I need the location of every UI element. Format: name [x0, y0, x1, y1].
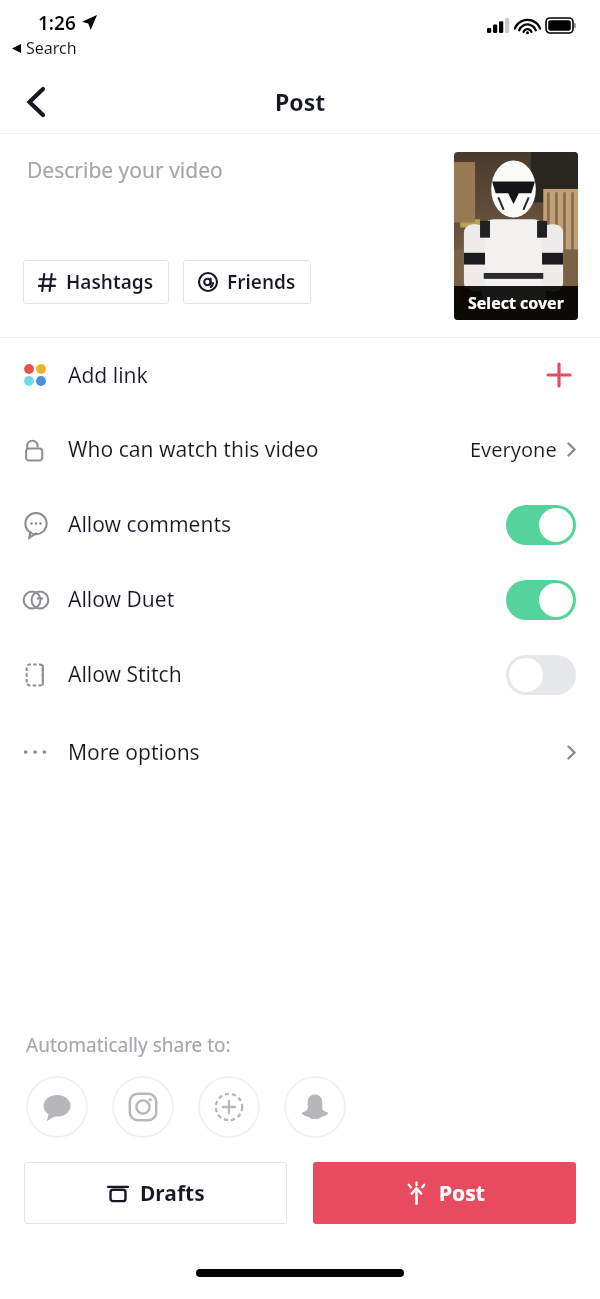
staticText: Hashtags	[66, 269, 154, 295]
staticText: Select cover	[468, 292, 564, 314]
button[interactable]: Post	[313, 1162, 576, 1224]
staticText: Allow Stitch	[68, 660, 182, 689]
staticText: Post	[439, 1179, 485, 1208]
button[interactable]: On	[506, 580, 576, 620]
button[interactable]: Drafts	[24, 1162, 287, 1224]
staticText: More options	[68, 738, 200, 767]
staticText: Who can watch this video	[68, 435, 319, 464]
button[interactable]: Off	[506, 655, 576, 695]
staticText: Describe your video	[27, 156, 223, 185]
staticText: 1:26	[38, 10, 76, 36]
button[interactable]: Share to Messages	[26, 1076, 88, 1138]
button[interactable]: Hashtags	[23, 260, 169, 304]
button[interactable]: Add link	[542, 358, 576, 392]
staticText: Allow Duet	[68, 585, 175, 614]
staticText: Post	[275, 86, 326, 117]
button[interactable]: Select cover	[454, 152, 578, 320]
staticText: Everyone	[470, 436, 557, 463]
staticText: Add link	[68, 361, 148, 390]
button[interactable]: More options	[0, 712, 600, 792]
button[interactable]: On	[506, 505, 576, 545]
button[interactable]: Share to Snapchat	[284, 1076, 346, 1138]
staticText: Search	[26, 37, 77, 59]
staticText: Friends	[227, 269, 296, 295]
button[interactable]: Back	[10, 77, 60, 127]
staticText: Allow comments	[68, 510, 232, 539]
button[interactable]: Allow Duet	[0, 562, 600, 637]
staticText: Drafts	[140, 1179, 205, 1208]
staticText: Automatically share to:	[26, 1032, 231, 1058]
button[interactable]: Allow comments	[0, 487, 600, 562]
button[interactable]: Add link	[0, 338, 600, 412]
button[interactable]: Share to Instagram Story	[198, 1076, 260, 1138]
button[interactable]: Who can watch this video	[0, 412, 600, 487]
button[interactable]: Friends	[183, 260, 311, 304]
button[interactable]: Share to Instagram	[112, 1076, 174, 1138]
button[interactable]: Allow Stitch	[0, 637, 600, 712]
